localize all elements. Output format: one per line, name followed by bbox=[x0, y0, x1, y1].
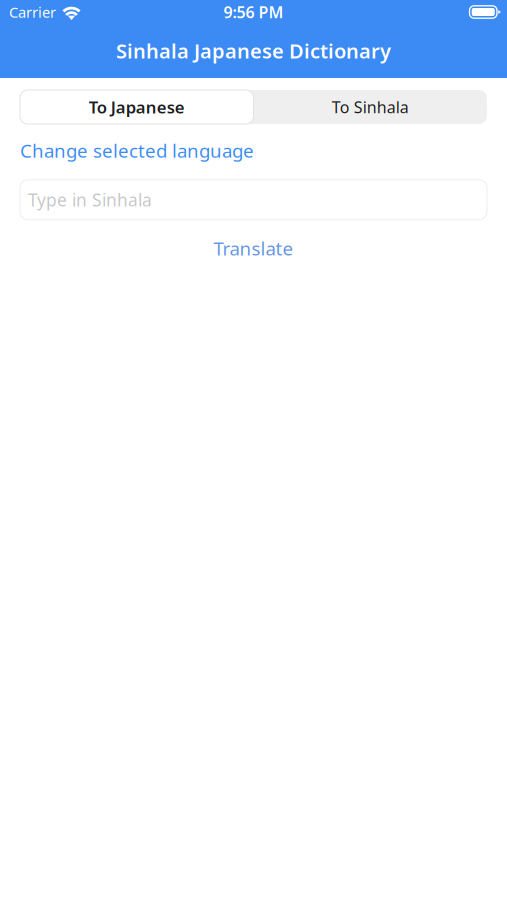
button[interactable]: To Japanese bbox=[20, 90, 253, 124]
staticText: Change selected language bbox=[20, 138, 254, 163]
staticText: Carrier bbox=[9, 2, 56, 22]
staticText: 9:56 PM bbox=[223, 1, 283, 23]
button[interactable]: Change selected language bbox=[20, 138, 487, 163]
button[interactable]: Type in Sinhala bbox=[20, 180, 487, 220]
button[interactable]: Translate bbox=[213, 236, 293, 261]
staticText: To Sinhala bbox=[332, 96, 409, 118]
staticText: Type in Sinhala bbox=[28, 188, 152, 211]
button[interactable]: To Sinhala bbox=[253, 90, 487, 124]
staticText: Sinhala Japanese Dictionary bbox=[116, 37, 391, 64]
staticText: Translate bbox=[213, 236, 293, 261]
staticText: To Japanese bbox=[89, 96, 185, 118]
